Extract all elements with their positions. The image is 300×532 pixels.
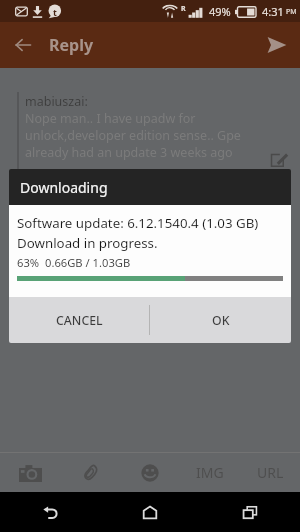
staticText: unlock,developer edition sense.. Gpe bbox=[25, 127, 241, 144]
button[interactable]: Send bbox=[254, 22, 300, 68]
staticText: IMG bbox=[196, 463, 224, 482]
button[interactable]: Back bbox=[0, 492, 100, 532]
staticText: Software update: 6.12.1540.4 (1.03 GB) bbox=[17, 214, 259, 232]
button[interactable]: Insert image bbox=[180, 453, 240, 492]
button[interactable]: Attach bbox=[60, 453, 120, 492]
button[interactable]: CANCEL bbox=[9, 297, 149, 343]
button[interactable]: OK bbox=[150, 297, 291, 343]
staticText: Download in progress. bbox=[17, 234, 158, 252]
button[interactable]: Edit bbox=[271, 153, 288, 167]
staticText: Reply bbox=[49, 34, 94, 56]
staticText: PM bbox=[286, 7, 297, 17]
staticText: OK bbox=[212, 312, 230, 329]
staticText: CANCEL bbox=[56, 312, 103, 329]
staticText: 49% bbox=[209, 4, 231, 19]
button[interactable]: Back bbox=[0, 22, 46, 68]
staticText: 0.66GB / 1.03GB bbox=[45, 255, 131, 270]
staticText: Nope man.. I have upadw for bbox=[25, 110, 196, 127]
staticText: already had an update 3 weeks ago bbox=[25, 144, 233, 161]
button[interactable]: Camera bbox=[0, 453, 60, 492]
button[interactable]: Insert link bbox=[240, 453, 300, 492]
staticText: URL bbox=[257, 463, 284, 482]
staticText: 4:31 bbox=[262, 4, 284, 19]
button[interactable]: Home bbox=[100, 492, 200, 532]
button[interactable]: Recents bbox=[200, 492, 300, 532]
staticText: 63% bbox=[17, 255, 40, 270]
button[interactable]: Emoji bbox=[120, 453, 180, 492]
staticText: mabiuszai: bbox=[25, 93, 88, 110]
staticText: Downloading bbox=[20, 178, 108, 197]
staticText: R bbox=[181, 4, 186, 14]
staticText: t bbox=[53, 6, 57, 18]
